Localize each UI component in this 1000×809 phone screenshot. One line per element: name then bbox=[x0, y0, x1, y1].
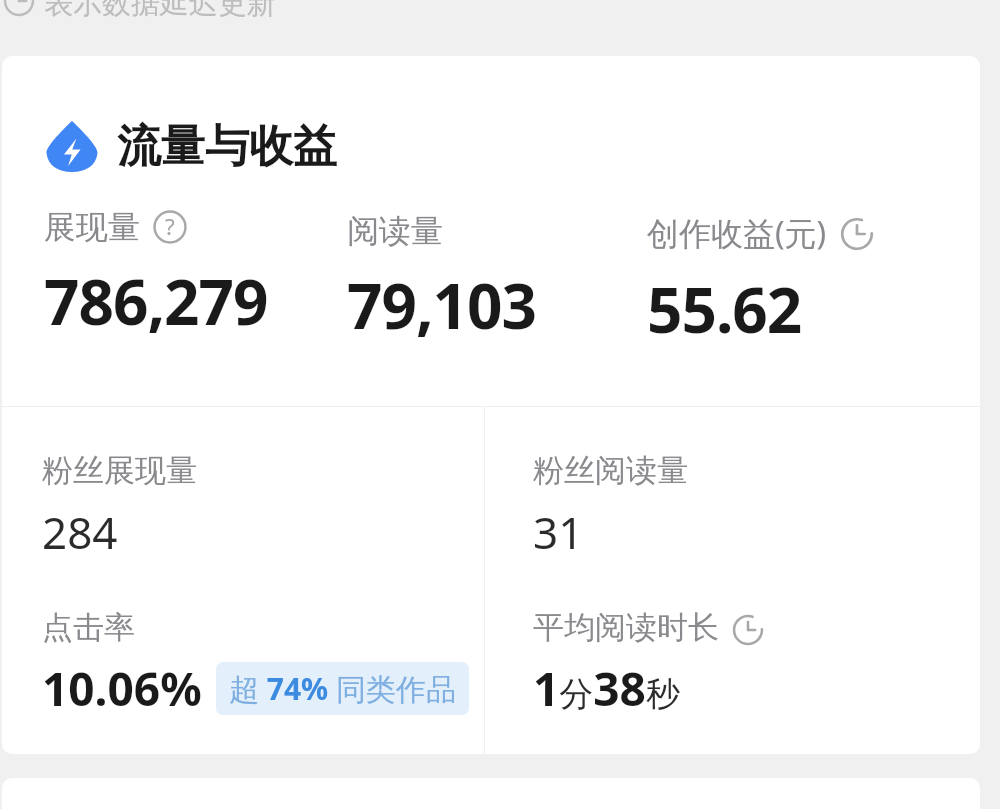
staticText: 79,103 bbox=[347, 263, 536, 347]
staticText: 粉丝阅读量 bbox=[533, 451, 688, 490]
staticText: 284 bbox=[42, 502, 118, 562]
staticText: 31 bbox=[533, 502, 584, 562]
staticText: 流量与收益 bbox=[117, 119, 337, 174]
button[interactable]: 流量与收益 bbox=[46, 118, 980, 173]
staticText: 粉丝展现量 bbox=[42, 451, 197, 490]
staticText: 786,279 bbox=[44, 259, 268, 343]
staticText: 创作收益(元) bbox=[647, 211, 827, 255]
staticText: 表示数据延迟更新 bbox=[44, 0, 276, 22]
staticText: 阅读量 bbox=[347, 211, 443, 251]
button[interactable]: 展现量说明 bbox=[152, 209, 188, 245]
staticText: ? bbox=[165, 211, 175, 241]
staticText: 点击率 bbox=[42, 608, 135, 647]
staticText: 1分38秒 bbox=[533, 657, 680, 720]
staticText: 展现量 bbox=[44, 207, 140, 247]
staticText: 平均阅读时长 bbox=[533, 608, 719, 647]
staticText: 55.62 bbox=[647, 267, 802, 351]
staticText: 超 74% 同类作品 bbox=[229, 668, 456, 709]
button[interactable]: 超 74% 同类作品 bbox=[216, 662, 469, 715]
staticText: 10.06% bbox=[42, 657, 202, 720]
